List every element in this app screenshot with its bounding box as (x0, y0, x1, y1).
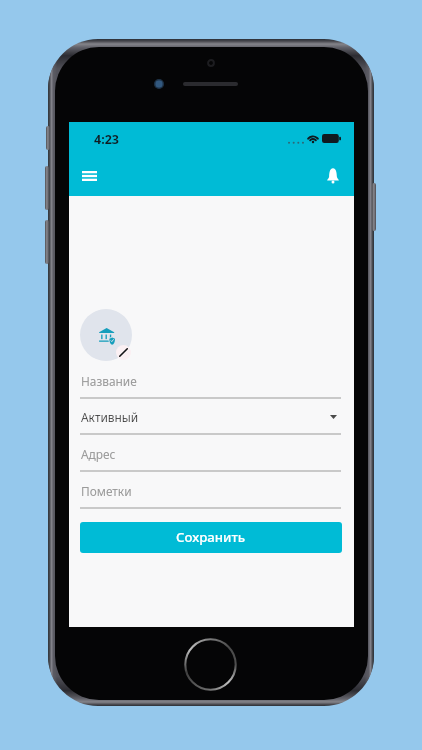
staticText: Сохранить (176, 528, 246, 546)
button[interactable]: Edit photo (116, 345, 131, 360)
staticText: Пометки (81, 483, 132, 499)
staticText: 4:23 (94, 131, 119, 148)
button[interactable]: Сохранить (80, 522, 342, 553)
staticText: Активный (81, 409, 139, 425)
staticText: Адрес (81, 446, 116, 462)
button[interactable]: Notifications (314, 156, 354, 196)
button[interactable]: Menu (70, 156, 110, 196)
staticText: Название (81, 373, 137, 389)
